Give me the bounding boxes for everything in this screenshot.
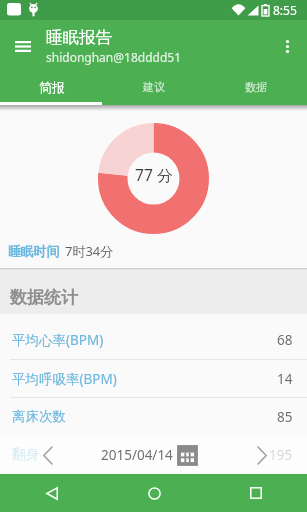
staticText: 翻身: [12, 446, 39, 463]
button[interactable]: Next day: [249, 442, 275, 468]
staticText: 195: [269, 446, 293, 464]
staticText: 平均呼吸率(BPM): [12, 370, 117, 388]
button[interactable]: More options: [271, 30, 303, 62]
staticText: 2015/04/14: [101, 446, 173, 464]
button[interactable]: Home: [103, 474, 205, 512]
staticText: 85: [277, 408, 293, 426]
button[interactable]: 平均呼吸率(BPM): [0, 360, 307, 397]
staticText: 睡眠报告: [46, 27, 112, 48]
button[interactable]: 平均心率(BPM): [0, 321, 307, 359]
staticText: 离床次数: [12, 408, 66, 425]
button[interactable]: Back: [0, 474, 103, 512]
staticText: 建议: [143, 80, 165, 94]
staticText: shidonghan@18dddd51: [46, 49, 182, 65]
button[interactable]: 数据: [205, 72, 307, 102]
staticText: 平均心率(BPM): [12, 331, 104, 349]
staticText: 睡眠时间: [8, 244, 60, 260]
button[interactable]: Recents: [205, 474, 307, 512]
button[interactable]: 建议: [103, 72, 205, 102]
button[interactable]: 离床次数: [0, 398, 307, 435]
button[interactable]: Menu: [7, 30, 39, 62]
button[interactable]: 翻身: [0, 436, 307, 473]
button[interactable]: Pick date: [178, 446, 196, 464]
staticText: 68: [277, 331, 293, 349]
staticText: 数据: [245, 80, 267, 94]
staticText: 数据统计: [10, 287, 78, 308]
staticText: 77 分: [135, 164, 173, 185]
staticText: 8:55: [273, 2, 297, 18]
staticText: 14: [277, 370, 293, 388]
staticText: 简报: [39, 79, 65, 95]
button[interactable]: Previous day: [34, 442, 60, 468]
staticText: 7时34分: [65, 242, 114, 260]
button[interactable]: 简报: [0, 72, 103, 102]
